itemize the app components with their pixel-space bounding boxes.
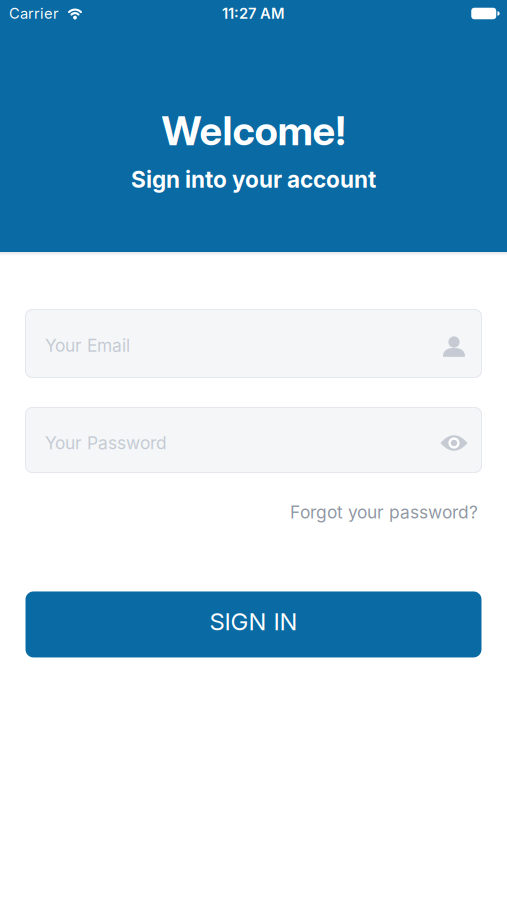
staticText: Welcome! [161, 107, 345, 154]
staticText: Your Email [45, 335, 130, 356]
button[interactable]: Your Password [25, 407, 482, 473]
staticText: Carrier [9, 5, 59, 22]
button[interactable]: SIGN IN [25, 591, 481, 657]
button[interactable]: Show password [440, 433, 468, 453]
staticText: SIGN IN [209, 607, 297, 636]
staticText: Sign into your account [131, 166, 376, 193]
staticText: 11:27 AM [222, 5, 285, 22]
staticText: Your Password [45, 433, 167, 453]
staticText: Forgot your password? [290, 502, 478, 522]
button[interactable]: Your Email [25, 309, 482, 378]
button[interactable]: Forgot your password? [290, 502, 478, 522]
